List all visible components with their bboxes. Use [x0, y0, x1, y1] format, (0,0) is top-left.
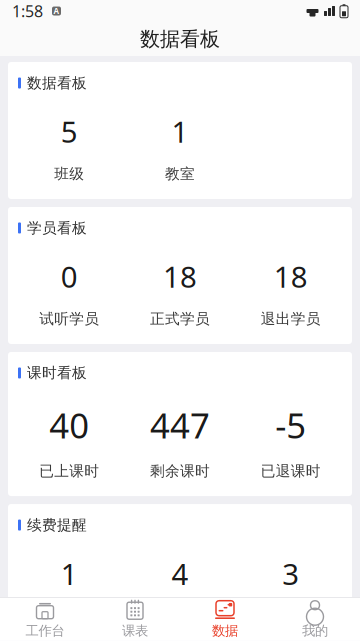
staticText: A: [53, 6, 59, 16]
staticText: 剩余课时: [150, 462, 210, 480]
staticText: 4: [171, 554, 188, 593]
staticText: 正式学员: [150, 310, 210, 328]
staticText: 40: [49, 402, 89, 448]
staticText: 数据看板: [27, 74, 87, 92]
staticText: 18: [163, 257, 197, 296]
staticText: 数据: [212, 623, 238, 639]
button[interactable]: 0: [14, 257, 125, 328]
staticText: 课时看板: [27, 364, 87, 382]
staticText: 已退课时: [261, 462, 321, 480]
button[interactable]: 18: [125, 257, 235, 328]
staticText: 续费提醒: [27, 516, 87, 534]
button[interactable]: 4: [125, 554, 235, 625]
button[interactable]: 3: [235, 554, 346, 625]
staticText: 我的: [302, 623, 328, 639]
staticText: 1:58: [12, 0, 43, 22]
staticText: 学员看板: [27, 219, 87, 237]
staticText: 工作台: [25, 623, 64, 639]
staticText: 教室: [165, 165, 195, 183]
staticText: 1: [171, 112, 188, 151]
staticText: -5: [275, 402, 306, 448]
button[interactable]: 40: [14, 402, 125, 480]
staticText: 已上课时: [39, 462, 99, 480]
staticText: 默认: [54, 607, 84, 625]
staticText: 5: [61, 112, 78, 151]
button[interactable]: -5: [235, 402, 346, 480]
button[interactable]: 工作台: [0, 598, 90, 641]
staticText: 试听学员: [39, 310, 99, 328]
button[interactable]: 数据: [180, 598, 270, 641]
staticText: 1: [61, 554, 78, 593]
staticText: 3: [282, 554, 299, 593]
staticText: 数据看板: [140, 27, 220, 51]
button[interactable]: 5: [14, 112, 125, 183]
staticText: 447: [150, 402, 210, 448]
staticText: 班级: [54, 165, 84, 183]
button[interactable]: 1: [125, 112, 235, 183]
button[interactable]: 1: [14, 554, 125, 625]
staticText: 18: [274, 257, 308, 296]
button[interactable]: 我的: [270, 598, 360, 641]
staticText: 退出学员: [261, 310, 321, 328]
staticText: 课表: [122, 623, 148, 639]
button[interactable]: 18: [235, 257, 346, 328]
button[interactable]: 447: [125, 402, 235, 480]
button[interactable]: 课表: [90, 598, 180, 641]
staticText: 0: [61, 257, 78, 296]
